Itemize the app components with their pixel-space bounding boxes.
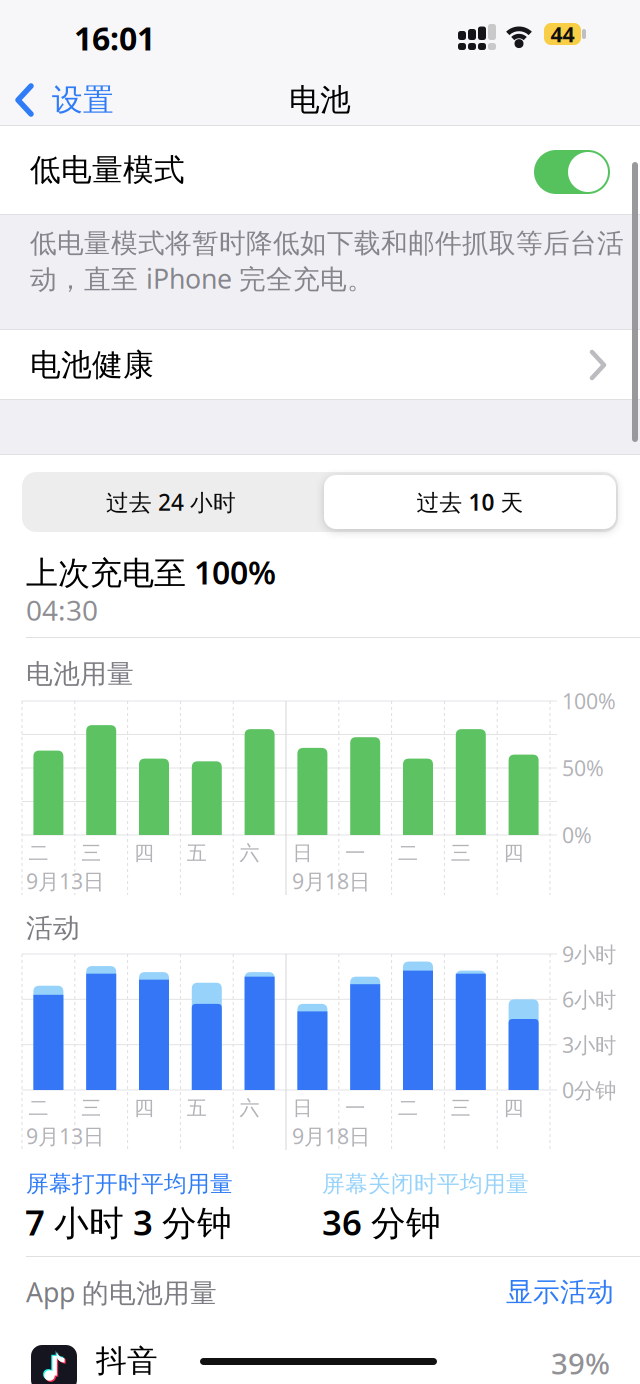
staticText: 过去 24 小时 <box>106 487 236 517</box>
staticText: 04:30 <box>26 591 98 629</box>
staticText: 100% <box>562 687 616 715</box>
staticText: 四 <box>134 841 154 865</box>
staticText: 四 <box>504 841 524 865</box>
staticText: 3小时 <box>562 1030 616 1059</box>
button[interactable]: 返回设置 <box>8 76 172 124</box>
staticText: 上次充电至 100% <box>26 551 276 593</box>
staticText: 0分钟 <box>562 1076 616 1104</box>
staticText: 三 <box>451 841 471 865</box>
staticText: 二 <box>28 1096 48 1120</box>
staticText: 二 <box>398 841 418 865</box>
staticText: 一 <box>345 1096 365 1120</box>
staticText: 9月18日 <box>292 1122 370 1150</box>
staticText: App 的电池用量 <box>26 1274 217 1310</box>
button[interactable]: 低电量模式开关 <box>534 150 610 194</box>
staticText: 36 分钟 <box>322 1199 441 1245</box>
staticText: 六 <box>240 841 260 865</box>
staticText: 9月13日 <box>26 867 104 895</box>
staticText: 五 <box>187 1096 207 1120</box>
staticText: 四 <box>504 1096 524 1120</box>
staticText: 50% <box>562 754 604 782</box>
staticText: 五 <box>187 841 207 865</box>
staticText: 屏幕关闭时平均用量 <box>322 1170 529 1198</box>
staticText: 三 <box>81 1096 101 1120</box>
staticText: 六 <box>240 1096 260 1120</box>
button[interactable]: 抖音 <box>0 1337 640 1384</box>
staticText: 屏幕打开时平均用量 <box>26 1170 233 1198</box>
staticText: 二 <box>398 1096 418 1120</box>
staticText: 二 <box>28 841 48 865</box>
staticText: 6小时 <box>562 985 616 1013</box>
staticText: 日 <box>292 1096 312 1120</box>
staticText: 44 <box>550 20 574 48</box>
staticText: 16:01 <box>74 17 155 59</box>
staticText: 低电量模式将暂时降低如下载和邮件抓取等后台活 <box>30 227 624 260</box>
staticText: 9月18日 <box>292 867 370 895</box>
staticText: 三 <box>81 841 101 865</box>
staticText: 抖音 <box>96 1342 158 1380</box>
button[interactable]: 显示活动 <box>414 1277 614 1307</box>
staticText: 0% <box>562 821 592 849</box>
staticText: 一 <box>345 841 365 865</box>
staticText: 电池健康 <box>30 346 154 384</box>
staticText: 四 <box>134 1096 154 1120</box>
staticText: 电池用量 <box>26 658 134 690</box>
button[interactable]: 电池健康 <box>0 330 640 399</box>
staticText: 设置 <box>52 81 114 119</box>
staticText: 9小时 <box>562 940 616 968</box>
staticText: 7 小时 3 分钟 <box>25 1199 232 1245</box>
button[interactable]: 过去 24 小时 <box>22 472 320 532</box>
button[interactable]: 过去 10 天 <box>324 475 616 529</box>
staticText: 39% <box>551 1343 610 1382</box>
staticText: 日 <box>292 841 312 865</box>
staticText: 过去 10 天 <box>416 487 523 517</box>
staticText: 活动 <box>26 912 80 944</box>
staticText: 三 <box>451 1096 471 1120</box>
staticText: 9月13日 <box>26 1122 104 1150</box>
staticText: 电池 <box>289 81 351 119</box>
staticText: 低电量模式 <box>30 151 185 189</box>
staticText: 动，直至 iPhone 完全充电。 <box>30 261 374 296</box>
staticText: 显示活动 <box>506 1276 614 1308</box>
